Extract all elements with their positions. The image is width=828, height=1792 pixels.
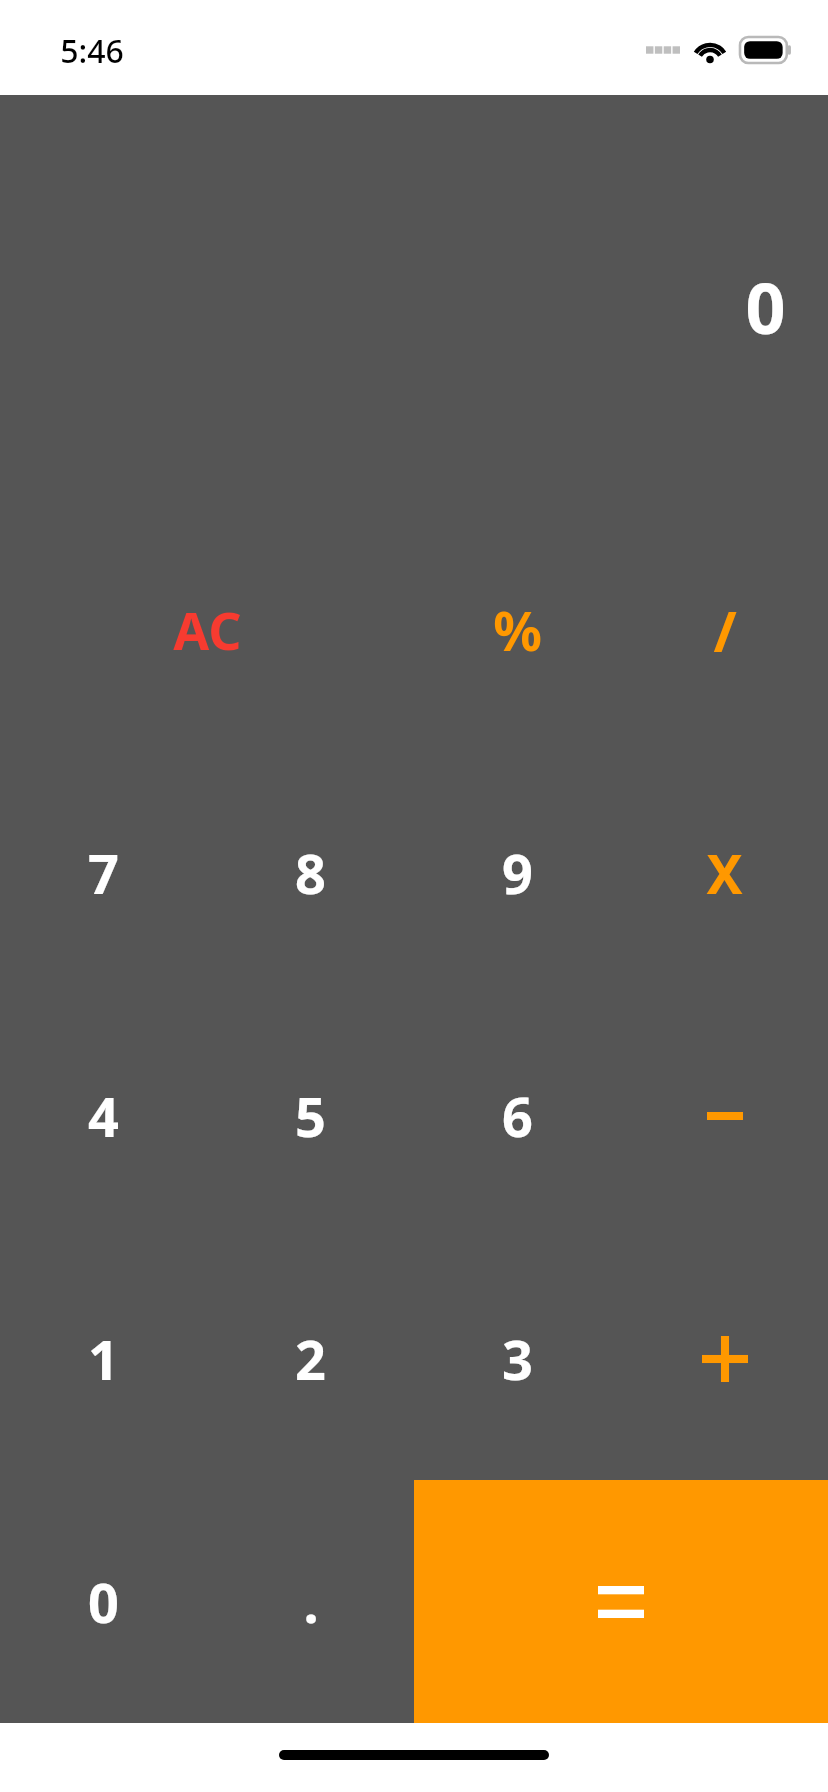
staticText: 5:46 — [60, 29, 124, 73]
button[interactable]: 6 — [414, 994, 621, 1237]
staticText: AC — [173, 594, 242, 665]
button[interactable]: % — [414, 508, 621, 751]
staticText: 0 — [745, 259, 786, 354]
button[interactable]: 0 — [0, 1480, 207, 1723]
button[interactable]: 3 — [414, 1237, 621, 1480]
button[interactable]: 8 — [207, 751, 414, 994]
button[interactable]: Equals — [414, 1480, 828, 1723]
button[interactable]: AC — [0, 508, 414, 751]
staticText: 1 — [88, 1322, 119, 1396]
staticText: . — [303, 1565, 319, 1639]
button[interactable]: X — [621, 751, 828, 994]
button[interactable]: 1 — [0, 1237, 207, 1480]
staticText: 3 — [502, 1322, 533, 1396]
button[interactable]: Plus — [621, 1237, 828, 1480]
other: Plus — [702, 1336, 748, 1382]
staticText: / — [713, 592, 737, 668]
button[interactable]: . — [207, 1480, 414, 1723]
staticText: 6 — [502, 1079, 533, 1153]
button[interactable]: 7 — [0, 751, 207, 994]
button[interactable]: 4 — [0, 994, 207, 1237]
staticText: 8 — [295, 836, 326, 910]
staticText: 7 — [88, 836, 119, 910]
staticText: 9 — [502, 836, 533, 910]
staticText: 0 — [88, 1565, 119, 1639]
staticText: % — [493, 593, 542, 667]
staticText: 2 — [295, 1322, 326, 1396]
staticText: 4 — [88, 1079, 119, 1153]
staticText: X — [706, 836, 743, 910]
button[interactable]: Minus — [621, 994, 828, 1237]
button[interactable]: 5 — [207, 994, 414, 1237]
staticText: 5 — [295, 1079, 326, 1153]
button[interactable]: 9 — [414, 751, 621, 994]
button[interactable]: 2 — [207, 1237, 414, 1480]
button[interactable]: / — [621, 508, 828, 751]
